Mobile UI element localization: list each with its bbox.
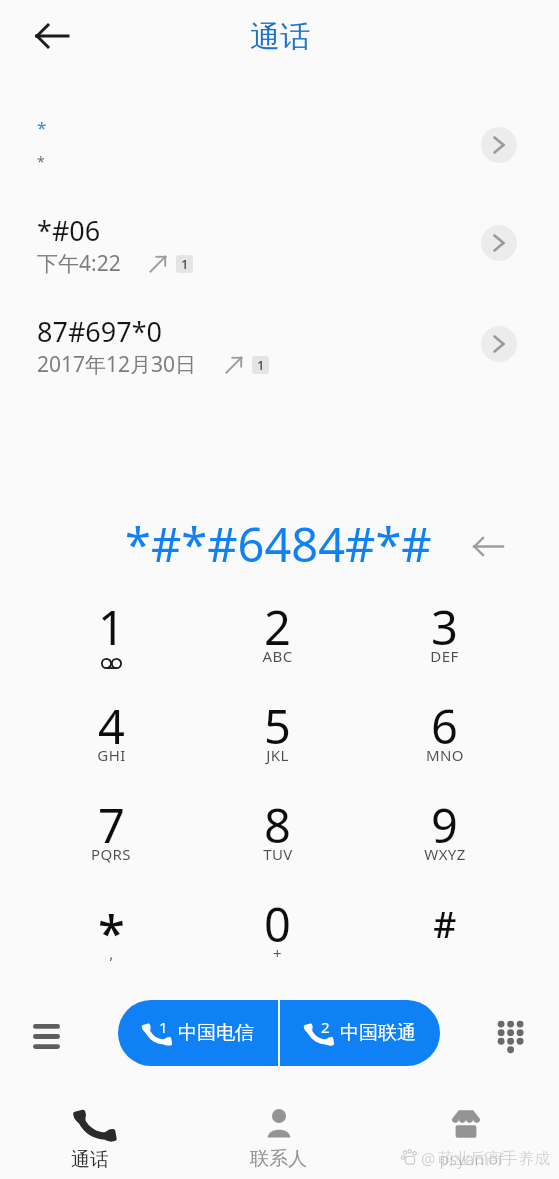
- staticText: *#*#6484#*#: [125, 512, 432, 576]
- button[interactable]: Backspace: [466, 524, 510, 568]
- staticText: *: [37, 116, 47, 139]
- staticText: 中国联通: [340, 1021, 416, 1045]
- staticText: DEF: [430, 646, 459, 666]
- staticText: ABC: [262, 646, 293, 666]
- staticText: 4: [98, 694, 125, 758]
- button[interactable]: *#*#6484#*#: [97, 502, 488, 588]
- staticText: 1: [181, 255, 189, 273]
- staticText: @ psyanlof: [421, 1148, 504, 1170]
- button[interactable]: 0: [194, 885, 361, 984]
- button[interactable]: 2: [280, 1000, 440, 1066]
- staticText: 通话: [250, 18, 310, 56]
- staticText: *#06: [37, 212, 101, 249]
- button[interactable]: 9: [361, 786, 528, 885]
- staticText: 5: [264, 694, 291, 758]
- staticText: 87#697*0: [37, 313, 162, 350]
- staticText: 联系人: [250, 1147, 307, 1171]
- staticText: PQRS: [91, 844, 131, 864]
- button[interactable]: 1: [118, 1000, 278, 1066]
- button[interactable]: 8: [194, 786, 361, 885]
- staticText: 通话: [71, 1148, 109, 1172]
- staticText: 3: [431, 595, 458, 659]
- button[interactable]: 1: [28, 588, 194, 687]
- staticText: 2: [321, 1017, 330, 1037]
- button[interactable]: *: [28, 885, 194, 984]
- button[interactable]: 87#697*0: [0, 307, 559, 399]
- button[interactable]: 7: [28, 786, 194, 885]
- button[interactable]: *: [0, 108, 559, 200]
- staticText: GHI: [97, 745, 126, 765]
- staticText: 2017年12月30日: [37, 350, 197, 379]
- button[interactable]: Call details: [481, 127, 517, 163]
- staticText: 萌业后高手养成: [438, 1149, 550, 1169]
- staticText: 6: [431, 694, 458, 758]
- staticText: 2: [264, 595, 291, 659]
- staticText: MNO: [426, 745, 464, 765]
- button[interactable]: More options: [22, 1012, 70, 1060]
- staticText: 0: [264, 892, 291, 956]
- staticText: *: [37, 152, 45, 171]
- staticText: *: [98, 899, 125, 966]
- staticText: 1: [257, 356, 265, 374]
- button[interactable]: 5: [194, 687, 361, 786]
- staticText: +: [273, 943, 282, 963]
- staticText: 下午4:22: [37, 249, 121, 278]
- button[interactable]: 4: [28, 687, 194, 786]
- staticText: 1: [98, 595, 125, 659]
- button[interactable]: Call details: [481, 326, 517, 362]
- button[interactable]: [406, 1092, 526, 1179]
- button[interactable]: 6: [361, 687, 528, 786]
- button[interactable]: 通话: [30, 1092, 150, 1179]
- staticText: #: [433, 900, 457, 949]
- staticText: 8: [264, 793, 291, 857]
- staticText: 7: [98, 793, 125, 857]
- staticText: ,: [109, 943, 114, 963]
- staticText: WXYZ: [424, 844, 466, 864]
- staticText: 9: [431, 793, 458, 857]
- button[interactable]: Back: [28, 12, 76, 60]
- button[interactable]: 3: [361, 588, 528, 687]
- button[interactable]: 2: [194, 588, 361, 687]
- button[interactable]: 联系人: [218, 1092, 338, 1179]
- staticText: 中国电信: [178, 1021, 254, 1045]
- staticText: TUV: [263, 844, 293, 864]
- button[interactable]: #: [361, 885, 528, 984]
- staticText: 1: [159, 1017, 168, 1037]
- button[interactable]: Dialpad: [496, 1020, 544, 1068]
- staticText: JKL: [266, 745, 289, 765]
- button[interactable]: Call details: [481, 225, 517, 261]
- button[interactable]: *#06: [0, 206, 559, 298]
